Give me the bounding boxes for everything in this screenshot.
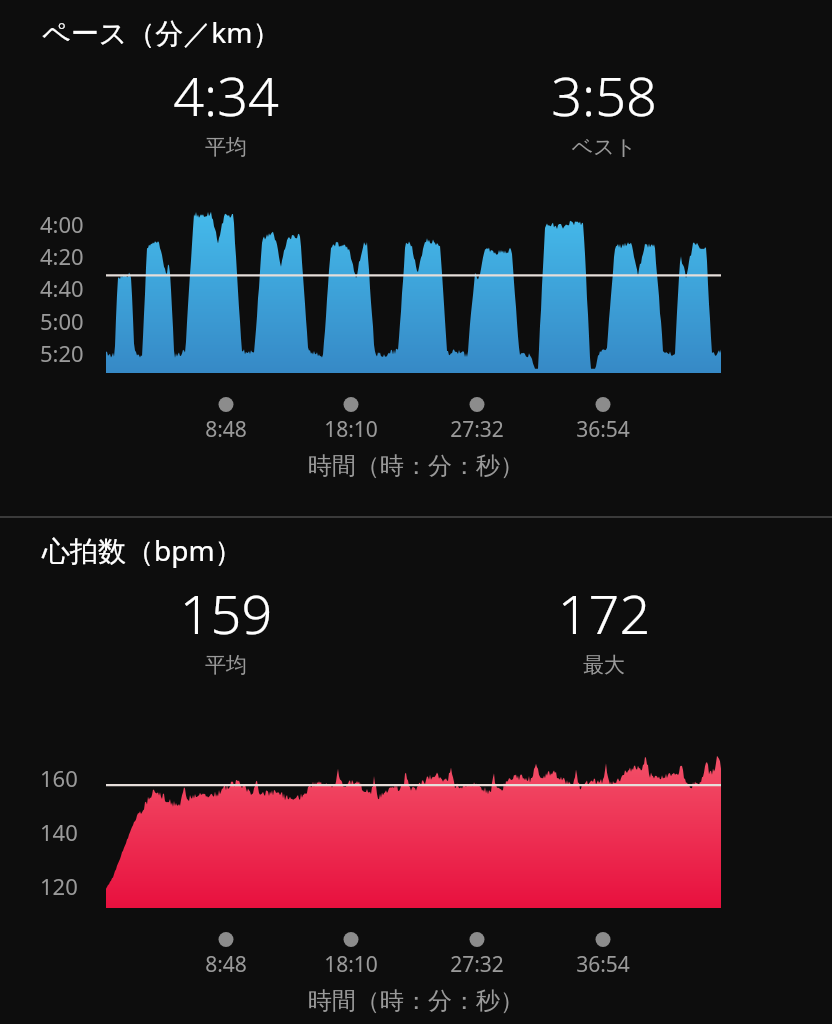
staticText: 5:20 — [40, 338, 84, 368]
staticText: 5:00 — [40, 306, 84, 336]
staticText: 159 — [116, 576, 336, 650]
staticText: 120 — [40, 871, 78, 901]
button[interactable]: ペース（分／km） — [42, 13, 281, 51]
staticText: 4:34 — [116, 58, 336, 132]
staticText: 160 — [40, 763, 78, 793]
staticText: 平均 — [116, 652, 336, 678]
staticText: ベスト — [494, 134, 714, 160]
button[interactable]: ベスト — [494, 58, 714, 158]
staticText: 172 — [494, 576, 714, 650]
button[interactable]: 平均 — [116, 58, 336, 158]
staticText: 時間（時：分：秒） — [0, 986, 832, 1016]
staticText: 27:32 — [427, 950, 527, 979]
button[interactable]: 心拍数（bpm） — [42, 531, 243, 569]
button[interactable]: 平均 — [116, 576, 336, 676]
staticText: 最大 — [494, 652, 714, 678]
staticText: 8:48 — [176, 415, 276, 444]
button[interactable]: 最大 — [494, 576, 714, 676]
staticText: 4:20 — [40, 241, 84, 271]
staticText: 27:32 — [427, 415, 527, 444]
staticText: 4:00 — [40, 209, 84, 239]
staticText: 4:40 — [40, 273, 84, 303]
staticText: 36:54 — [553, 950, 653, 979]
staticText: 18:10 — [301, 415, 401, 444]
staticText: 時間（時：分：秒） — [0, 451, 832, 481]
staticText: 平均 — [116, 134, 336, 160]
staticText: 36:54 — [553, 415, 653, 444]
staticText: 18:10 — [301, 950, 401, 979]
staticText: 3:58 — [494, 58, 714, 132]
staticText: 8:48 — [176, 950, 276, 979]
staticText: 140 — [40, 817, 78, 847]
